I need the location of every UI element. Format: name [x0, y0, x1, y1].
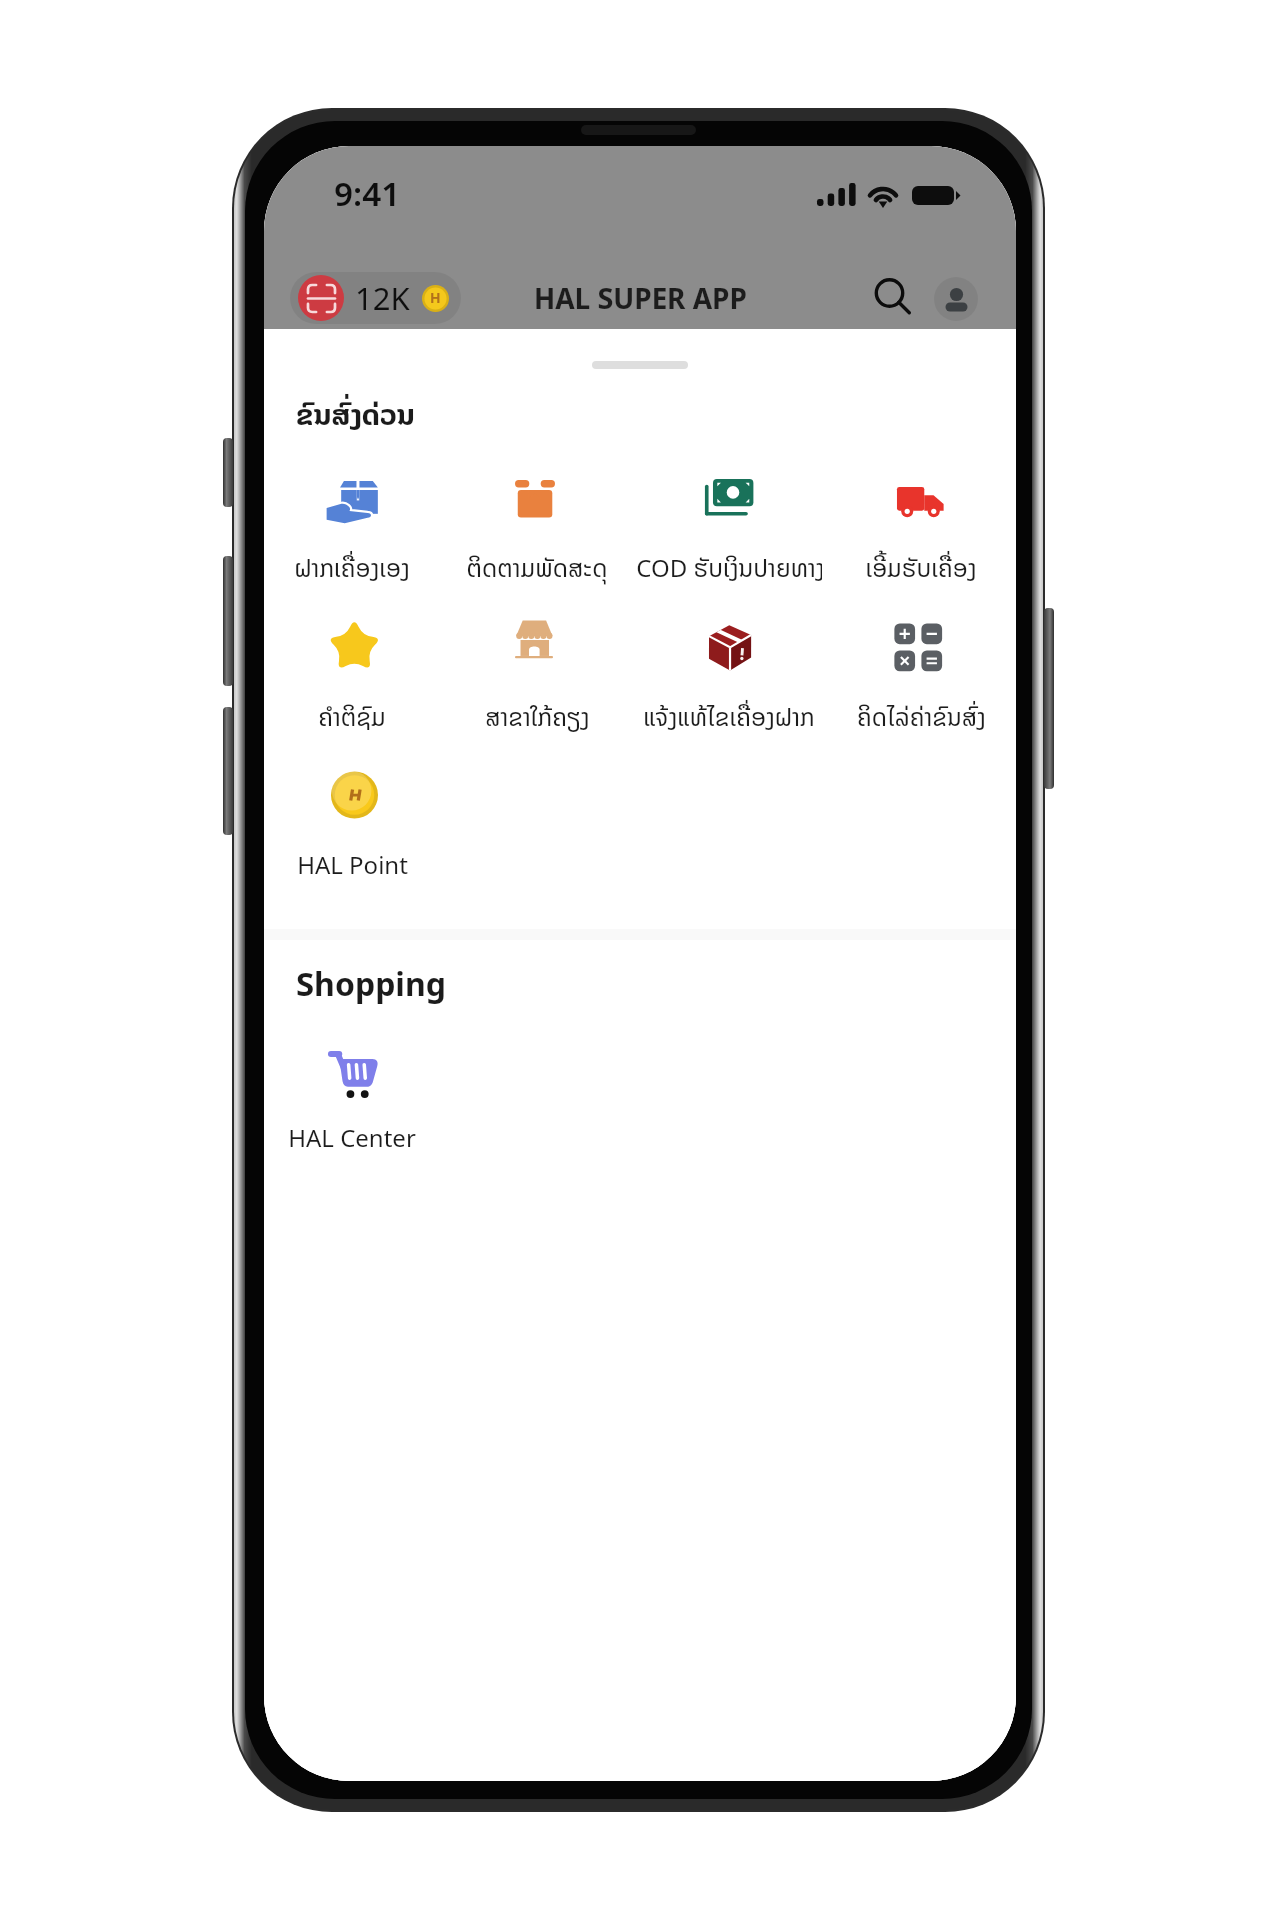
- button[interactable]: ຄຳຕິຊົມ: [264, 626, 445, 738]
- staticText: 12K: [355, 273, 410, 324]
- button[interactable]: 12K: [290, 272, 461, 324]
- staticText: ຄິດໄລ່ຄ່າຂົນສົ່ງ: [857, 698, 986, 737]
- staticText: ເອີ້ມຮັບເຄື່ອງ: [865, 549, 977, 588]
- button[interactable]: ຕິດຕາມພັດສະດຸ: [444, 477, 630, 589]
- button[interactable]: ຄິດໄລ່ຄ່າຂົນສົ່ງ: [828, 626, 1014, 738]
- button[interactable]: ເອີ້ມຮັບເຄື່ອງ: [828, 477, 1014, 589]
- staticText: ສາຂາໃກ້ຄຽງ: [485, 698, 590, 737]
- staticText: COD ຮັບເງິນປາຍທາງ: [636, 549, 822, 588]
- staticText: HAL SUPER APP: [534, 276, 747, 322]
- button[interactable]: Account: [934, 277, 978, 321]
- staticText: 9:41: [334, 167, 401, 221]
- button[interactable]: ຝາກເຄື່ອງເອງ: [264, 477, 445, 589]
- button[interactable]: Search: [868, 272, 920, 324]
- staticText: HAL Center: [288, 1119, 416, 1158]
- staticText: H: [430, 286, 441, 309]
- staticText: Shopping: [296, 958, 446, 1011]
- button[interactable]: COD ຮັບເງິນປາຍທາງ: [636, 477, 822, 589]
- staticText: HAL Point: [297, 846, 408, 885]
- button[interactable]: HAL Center: [264, 1047, 445, 1159]
- staticText: ຂົນສົ່ງດ່ວນ: [296, 391, 415, 439]
- staticText: ຄຳຕິຊົມ: [318, 698, 386, 737]
- staticText: ຕິດຕາມພັດສະດຸ: [466, 549, 608, 588]
- staticText: ຝາກເຄື່ອງເອງ: [294, 549, 410, 588]
- button[interactable]: ແຈ້ງແທ້ໄຂເຄື່ອງຝາກ: [636, 626, 822, 738]
- button[interactable]: ສາຂາໃກ້ຄຽງ: [444, 626, 630, 738]
- button[interactable]: HAL Point: [264, 774, 445, 886]
- staticText: ແຈ້ງແທ້ໄຂເຄື່ອງຝາກ: [643, 698, 815, 737]
